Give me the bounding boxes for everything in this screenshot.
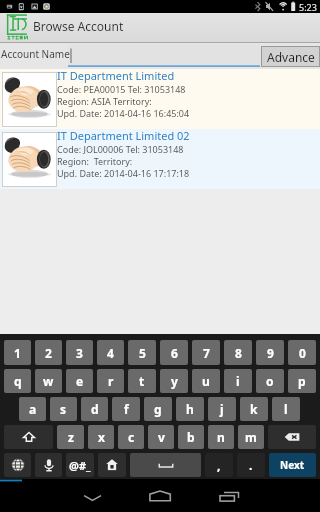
staticText: u <box>202 373 210 389</box>
staticText: i <box>236 373 240 389</box>
button[interactable]: e <box>66 369 93 393</box>
staticText: IT Department Limited <box>57 68 175 83</box>
button[interactable]: r <box>97 369 124 393</box>
button[interactable]: . <box>237 453 265 477</box>
button[interactable]: g <box>144 397 172 421</box>
staticText: a <box>29 401 37 417</box>
staticText: y <box>171 373 178 389</box>
button[interactable]: a <box>19 397 46 421</box>
button[interactable]: 4 <box>97 340 124 365</box>
button[interactable]: 9 <box>256 340 284 365</box>
button[interactable]: Home <box>137 479 182 512</box>
button[interactable]: n <box>208 425 234 449</box>
button[interactable]: t <box>128 369 156 393</box>
button[interactable]: @#_ <box>66 453 94 477</box>
staticText: 7 <box>203 345 210 361</box>
staticText: d <box>91 401 99 417</box>
button[interactable]: 0 <box>288 340 316 365</box>
button[interactable]: Shift <box>4 425 53 449</box>
staticText: o <box>266 373 274 389</box>
staticText: q <box>14 373 22 389</box>
button[interactable]: Language <box>4 453 31 477</box>
button[interactable]: ITCRM logo <box>0 13 30 43</box>
button[interactable]: l <box>272 397 300 421</box>
staticText: s <box>60 401 67 417</box>
button[interactable]: o <box>256 369 284 393</box>
button[interactable]: 7 <box>192 340 220 365</box>
button[interactable]: 1 <box>4 340 31 365</box>
staticText: z <box>68 429 74 445</box>
staticText: w <box>43 373 54 389</box>
staticText: Next <box>280 458 305 472</box>
staticText: e <box>76 373 84 389</box>
button[interactable]: Backspace <box>268 425 316 449</box>
staticText: 2 <box>45 345 52 361</box>
staticText: , <box>217 457 221 473</box>
button[interactable]: s <box>50 397 77 421</box>
staticText: 0 <box>299 345 306 361</box>
staticText: 5 <box>139 345 146 361</box>
staticText: k <box>250 401 258 417</box>
staticText: m <box>245 429 257 445</box>
staticText: l <box>284 401 288 417</box>
staticText: 5:23 <box>299 1 317 13</box>
button[interactable]: m <box>238 425 264 449</box>
staticText: h <box>186 401 194 417</box>
button[interactable]: IT Department Limited 02 <box>0 129 320 189</box>
button[interactable]: , <box>205 453 233 477</box>
button[interactable]: p <box>288 369 316 393</box>
button[interactable]: 5 <box>128 340 156 365</box>
button[interactable]: u <box>192 369 220 393</box>
staticText: . <box>249 457 253 473</box>
staticText: r <box>108 373 114 389</box>
staticText: p <box>298 373 306 389</box>
button[interactable]: 8 <box>224 340 252 365</box>
button[interactable]: 2 <box>35 340 62 365</box>
button[interactable]: x <box>88 425 114 449</box>
staticText: n <box>217 429 225 445</box>
button[interactable]: Voice input <box>35 453 62 477</box>
button[interactable]: i <box>224 369 252 393</box>
button[interactable]: q <box>4 369 31 393</box>
button[interactable]: Space <box>130 453 201 477</box>
staticText: 1 <box>14 345 21 361</box>
staticText: g <box>154 401 162 417</box>
button[interactable]: j <box>208 397 236 421</box>
staticText: Region: Territory: <box>57 155 133 167</box>
staticText: Account Name <box>1 47 70 61</box>
staticText: Browse Account <box>33 18 124 34</box>
staticText: Advance <box>267 49 315 65</box>
staticText: c <box>128 429 135 445</box>
button[interactable]: v <box>148 425 174 449</box>
staticText: 4 <box>107 345 114 361</box>
staticText: f <box>124 401 129 417</box>
staticText: 6 <box>171 345 178 361</box>
staticText: Region: ASIA Territory: <box>57 95 152 107</box>
button[interactable]: k <box>240 397 268 421</box>
button[interactable]: 3 <box>66 340 93 365</box>
button[interactable]: IT Department Limited <box>0 69 320 129</box>
staticText: 8 <box>235 345 242 361</box>
staticText: t <box>139 373 145 389</box>
button[interactable]: Back <box>70 479 115 512</box>
button[interactable]: b <box>178 425 204 449</box>
button[interactable]: Next <box>269 453 316 477</box>
button[interactable]: d <box>81 397 108 421</box>
button[interactable]: Recent apps <box>206 479 251 512</box>
button[interactable]: w <box>35 369 62 393</box>
staticText: Upd. Date: 2014-04-16 17:17:18 <box>57 167 190 179</box>
staticText: 9 <box>267 345 274 361</box>
button[interactable]: Symbols <box>98 453 126 477</box>
button[interactable]: f <box>112 397 140 421</box>
staticText: v <box>158 429 165 445</box>
button[interactable]: Advance <box>261 46 320 67</box>
button[interactable]: c <box>118 425 144 449</box>
button[interactable]: 6 <box>160 340 188 365</box>
staticText: x <box>98 429 105 445</box>
button[interactable]: z <box>57 425 84 449</box>
staticText: 3 <box>76 345 83 361</box>
staticText: j <box>220 401 224 417</box>
button[interactable]: y <box>160 369 188 393</box>
button[interactable]: h <box>176 397 204 421</box>
staticText: IT Department Limited 02 <box>57 128 190 143</box>
